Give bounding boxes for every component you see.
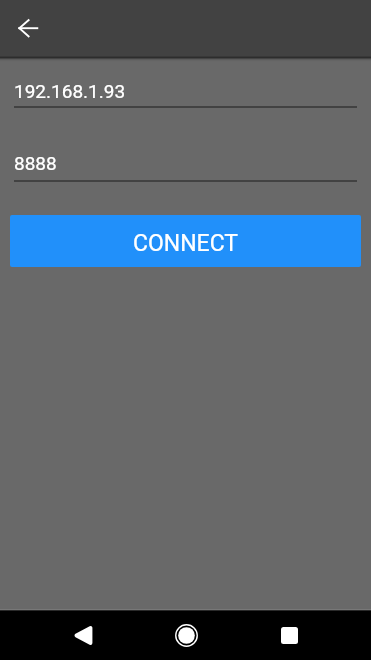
button[interactable]: Back — [56, 611, 108, 660]
staticText: 8888 — [14, 152, 57, 174]
staticText: CONNECT — [133, 230, 239, 257]
button[interactable]: CONNECT — [10, 215, 361, 267]
button[interactable]: 8888 — [0, 152, 371, 182]
button[interactable]: Home — [160, 611, 212, 660]
button[interactable]: Navigate up — [4, 4, 52, 52]
staticText: 192.168.1.93 — [14, 80, 126, 102]
button[interactable]: 192.168.1.93 — [0, 80, 371, 110]
button[interactable]: Recent apps — [263, 611, 315, 660]
